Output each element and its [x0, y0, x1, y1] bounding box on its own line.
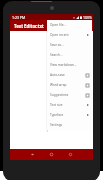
- button[interactable]: Typeface: [47, 110, 92, 120]
- button[interactable]: Auto-save: [47, 70, 92, 80]
- staticText: Save as...: [50, 43, 89, 47]
- staticText: View markdown...: [50, 63, 89, 67]
- staticText: Open file...: [50, 23, 89, 27]
- button[interactable]: Settings: [47, 120, 92, 130]
- staticText: Suggestions: [50, 93, 86, 97]
- button[interactable]: Open recent: [47, 30, 92, 40]
- staticText: Settings: [50, 123, 89, 127]
- button[interactable]: Save as...: [47, 40, 92, 50]
- staticText: Auto-save: [50, 73, 86, 77]
- staticText: Open recent: [50, 33, 87, 37]
- button[interactable]: Share: [65, 149, 75, 160]
- button[interactable]: Redo: [46, 149, 56, 160]
- button[interactable]: Undo: [27, 149, 37, 160]
- staticText: Text Editor.txt: [14, 23, 44, 29]
- staticText: 100%: [83, 15, 92, 20]
- staticText: Word wrap: [50, 83, 86, 87]
- button[interactable]: View markdown...: [47, 60, 92, 70]
- button[interactable]: Word wrap: [47, 80, 92, 90]
- staticText: Search...: [50, 53, 89, 57]
- button[interactable]: Suggestions: [47, 90, 92, 100]
- staticText: Typeface: [50, 113, 87, 117]
- button[interactable]: Text size: [47, 100, 92, 110]
- staticText: 1:23 PM: [12, 15, 26, 20]
- button[interactable]: Search...: [47, 50, 92, 60]
- button[interactable]: Open file...: [47, 20, 92, 30]
- staticText: Text size: [50, 103, 87, 107]
